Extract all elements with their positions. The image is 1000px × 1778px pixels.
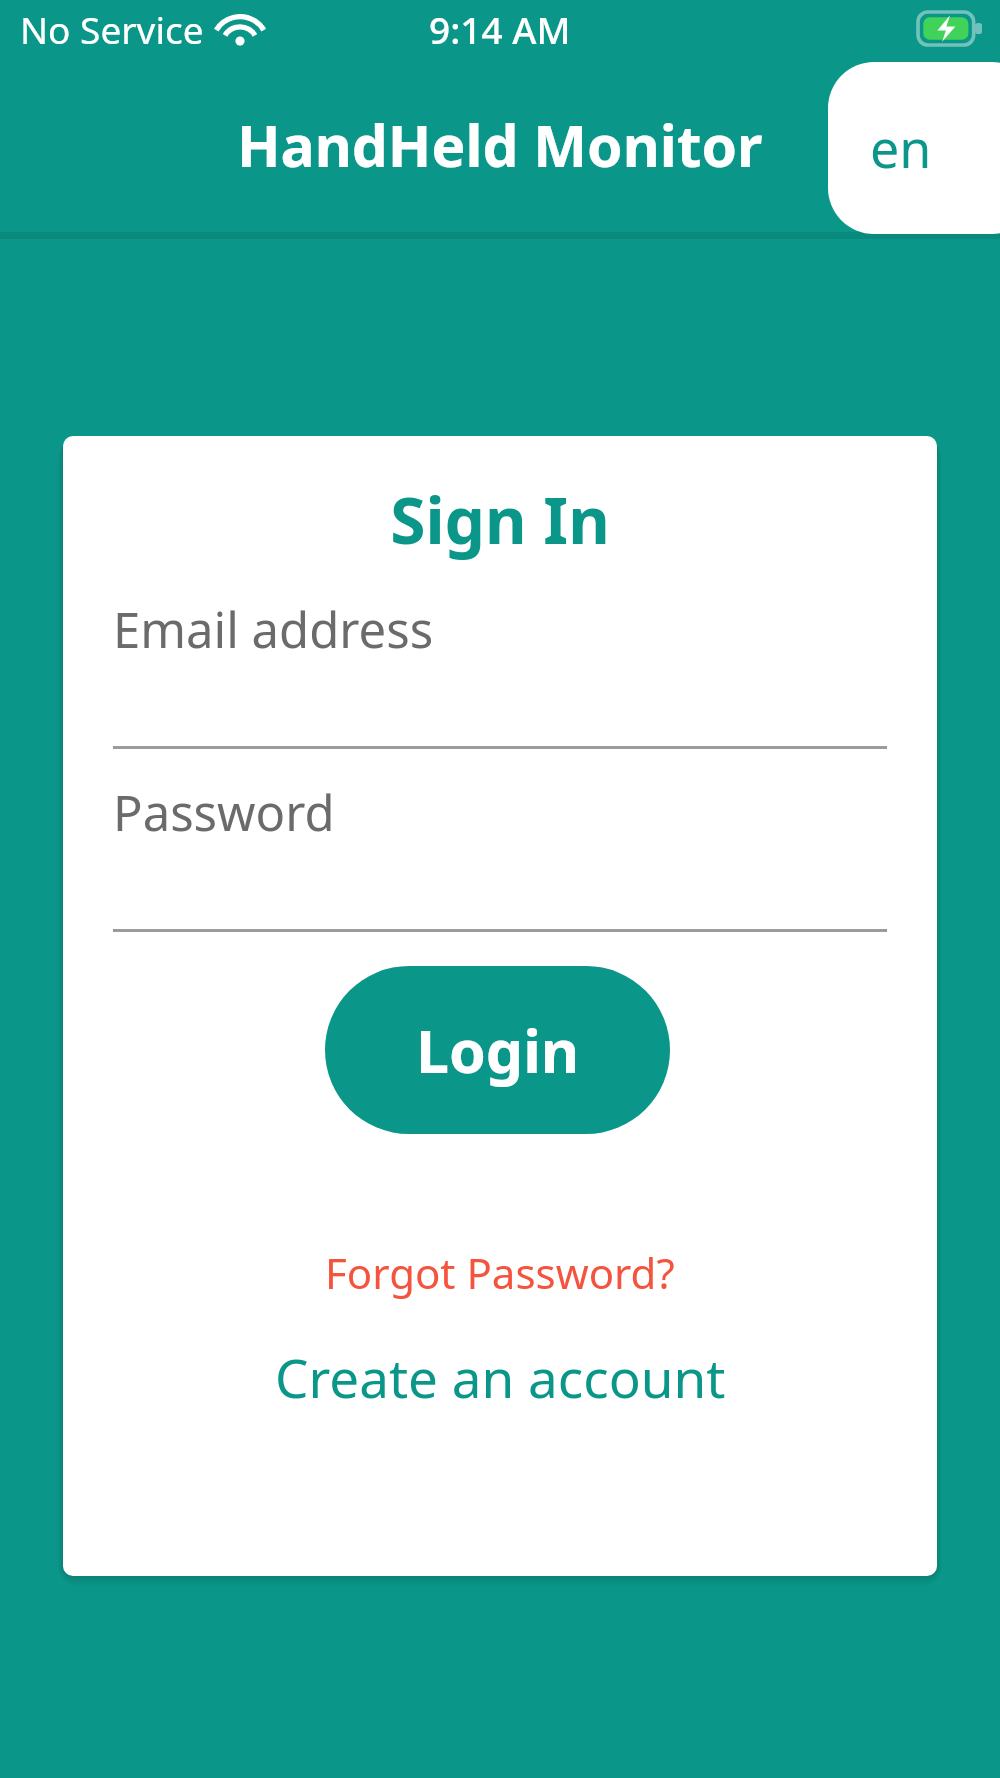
staticText: HandHeld Monitor xyxy=(237,106,763,184)
staticText: No Service xyxy=(20,4,204,54)
staticText: en xyxy=(870,112,932,183)
button[interactable]: Change language, English xyxy=(828,62,1000,234)
staticText: 9:14 AM xyxy=(429,4,571,54)
staticText: Login xyxy=(416,1010,580,1090)
button[interactable]: Forgot Password? xyxy=(63,1234,937,1310)
button[interactable]: Email address xyxy=(113,596,887,749)
staticText: Password xyxy=(113,779,335,846)
other: Battery charging xyxy=(918,12,982,45)
button[interactable]: Password xyxy=(113,779,887,932)
button[interactable]: Create an account xyxy=(63,1332,937,1422)
staticText: Sign In xyxy=(63,476,937,563)
staticText: Create an account xyxy=(275,1341,726,1413)
staticText: Email address xyxy=(113,596,434,663)
staticText: Forgot Password? xyxy=(325,1244,675,1301)
button[interactable]: Login xyxy=(325,966,670,1134)
